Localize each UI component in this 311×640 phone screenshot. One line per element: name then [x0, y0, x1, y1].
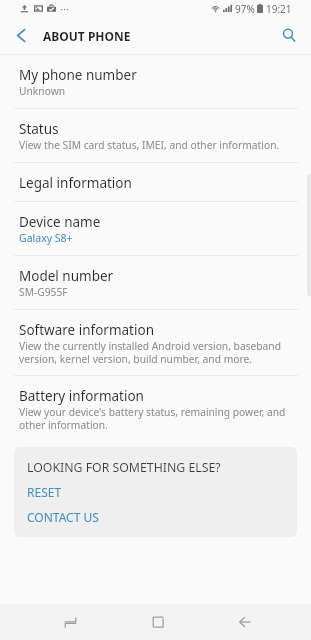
staticText: View your device's battery status, remai…: [19, 405, 289, 432]
button[interactable]: CONTACT US: [27, 509, 99, 525]
staticText: Device name: [19, 213, 101, 231]
button[interactable]: Legal information: [0, 163, 311, 201]
staticText: Galaxy S8+: [19, 231, 73, 245]
staticText: Software information: [19, 321, 154, 339]
button[interactable]: Home: [114, 604, 201, 640]
staticText: CONTACT US: [27, 509, 99, 525]
button[interactable]: Model number: [0, 256, 311, 309]
staticText: LOOKING FOR SOMETHING ELSE?: [27, 459, 221, 476]
staticText: ABOUT PHONE: [43, 28, 131, 44]
staticText: RESET: [27, 484, 62, 500]
button[interactable]: Software information: [0, 310, 311, 375]
staticText: View the currently installed Android ver…: [19, 339, 289, 366]
button[interactable]: Status: [0, 109, 311, 162]
button[interactable]: Navigate up: [0, 17, 41, 54]
button[interactable]: RESET: [27, 484, 62, 500]
staticText: Model number: [19, 267, 114, 285]
staticText: Legal information: [19, 174, 132, 192]
button[interactable]: Battery information: [0, 376, 311, 441]
button[interactable]: Back: [201, 604, 288, 640]
staticText: View the SIM card status, IMEI, and othe…: [19, 138, 280, 152]
button[interactable]: Recent apps: [27, 604, 114, 640]
staticText: Status: [19, 120, 59, 138]
button[interactable]: Search: [267, 17, 311, 54]
button[interactable]: My phone number: [0, 55, 311, 108]
staticText: SM-G955F: [19, 285, 68, 299]
staticText: 19:21: [266, 2, 292, 16]
button[interactable]: Device name: [0, 202, 311, 255]
staticText: My phone number: [19, 66, 137, 84]
staticText: Battery information: [19, 387, 144, 405]
staticText: 97%: [235, 2, 255, 16]
staticText: Unknown: [19, 84, 66, 98]
